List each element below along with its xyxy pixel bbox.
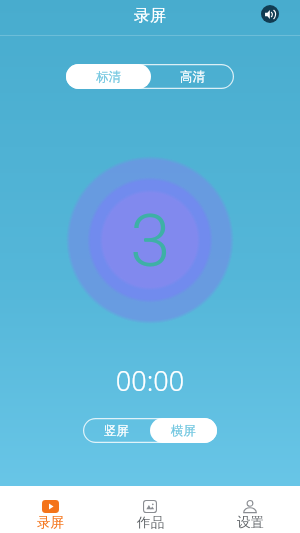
staticText: 设置 bbox=[237, 514, 264, 531]
staticText: 高清 bbox=[180, 69, 205, 85]
staticText: 00:00 bbox=[0, 362, 300, 399]
staticText: 横屏 bbox=[171, 423, 196, 439]
staticText: 录屏 bbox=[37, 514, 64, 531]
staticText: 竖屏 bbox=[104, 423, 129, 439]
button[interactable]: 设置 bbox=[200, 486, 300, 533]
staticText: 作品 bbox=[137, 514, 164, 531]
button[interactable]: Start recording bbox=[67, 157, 233, 323]
staticText: 录屏 bbox=[0, 6, 300, 26]
button[interactable]: 高清 bbox=[151, 64, 234, 89]
staticText: 标清 bbox=[96, 69, 121, 85]
button[interactable]: 横屏 bbox=[150, 418, 217, 443]
staticText: 3 bbox=[130, 198, 171, 284]
button[interactable]: 作品 bbox=[100, 486, 200, 533]
button[interactable]: 录屏 bbox=[0, 486, 100, 533]
button[interactable]: Sound bbox=[261, 5, 279, 23]
button[interactable]: 竖屏 bbox=[83, 418, 150, 443]
button[interactable]: 标清 bbox=[66, 64, 151, 89]
